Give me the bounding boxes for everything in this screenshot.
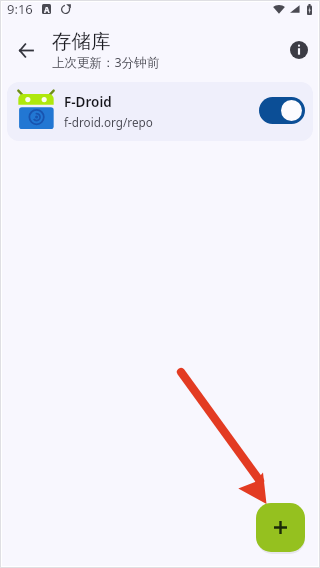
staticText: 9:16 [7,0,33,18]
button[interactable]: Add repository [256,503,305,552]
staticText: 存储库 [52,29,111,54]
button[interactable]: Back [0,22,52,82]
button[interactable]: Enable repository [258,95,306,129]
staticText: f-droid.org/repo [64,114,153,130]
staticText: 上次更新：3分钟前 [52,54,160,71]
button[interactable]: F-Droid [7,82,313,141]
staticText: A [44,4,50,14]
staticText: F-Droid [64,93,112,111]
button[interactable]: Info [278,22,320,82]
